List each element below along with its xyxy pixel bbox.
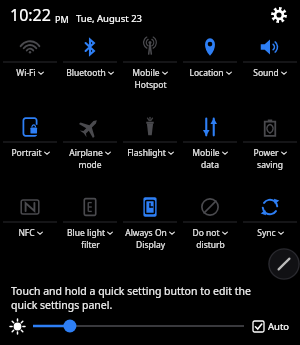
button[interactable]: Edit (268, 248, 300, 280)
button[interactable]: Sound (240, 32, 300, 112)
staticText: PM (55, 13, 69, 25)
staticText: Mobile (132, 67, 160, 79)
staticText: Touch and hold a quick setting button to… (11, 284, 266, 312)
staticText: Airplane (69, 147, 103, 159)
staticText: Mobile (192, 147, 220, 159)
staticText: Sync (257, 227, 276, 239)
button[interactable]: NFC (0, 192, 60, 272)
staticText: Blue light (67, 227, 105, 239)
button[interactable]: Always On (120, 192, 180, 272)
staticText: Wi-Fi (16, 67, 36, 79)
button[interactable]: Flashlight (120, 112, 180, 192)
staticText: NFC (18, 227, 35, 239)
staticText: Do not (192, 227, 220, 239)
button[interactable]: Mobile (120, 32, 180, 112)
staticText: Power (253, 147, 279, 159)
staticText: filter (81, 239, 100, 251)
staticText: Hotspot (134, 79, 167, 91)
button[interactable]: Location (180, 32, 240, 112)
button[interactable]: Auto (253, 320, 290, 333)
button[interactable]: Wi-Fi (0, 32, 60, 112)
staticText: Location (189, 67, 224, 79)
staticText: Always On (125, 227, 167, 239)
button[interactable]: Sync (240, 192, 300, 272)
staticText: saving (257, 159, 283, 171)
button[interactable]: Power (240, 112, 300, 192)
button[interactable]: Mobile (180, 112, 240, 192)
staticText: Auto (268, 320, 290, 333)
staticText: Flashlight (127, 147, 166, 159)
button[interactable]: Portrait (0, 112, 60, 192)
staticText: Portrait (11, 147, 42, 159)
button[interactable]: Brightness (33, 316, 244, 336)
button[interactable]: Airplane (60, 112, 120, 192)
button[interactable]: Bluetooth (60, 32, 120, 112)
button[interactable]: Settings (267, 3, 291, 27)
staticText: Bluetooth (66, 67, 106, 79)
button[interactable]: Blue light (60, 192, 120, 272)
staticText: Sound (253, 67, 279, 79)
staticText: disturb (196, 239, 225, 251)
staticText: data (201, 159, 219, 171)
staticText: Tue, August 23 (76, 12, 143, 25)
staticText: mode (78, 159, 102, 171)
staticText: Display (136, 239, 165, 251)
staticText: 10:22 (10, 4, 51, 26)
button[interactable]: Do not (180, 192, 240, 272)
